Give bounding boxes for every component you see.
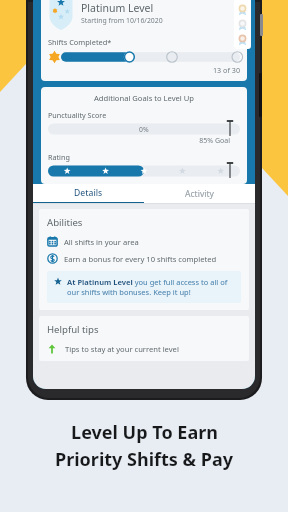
staticText: Rating	[48, 152, 70, 162]
other: Calendar	[47, 236, 58, 247]
staticText: Punctuality Score	[48, 110, 107, 120]
staticText: 0%	[139, 125, 149, 134]
staticText: Level Up To Earn	[71, 420, 218, 445]
staticText: Priority Shifts & Pay	[55, 447, 233, 472]
button[interactable]: Details	[33, 184, 144, 203]
other: Bonus	[47, 253, 58, 264]
button[interactable]: Activity	[144, 184, 255, 203]
button[interactable]: Abilities	[39, 209, 249, 310]
staticText: Shifts Completed*	[48, 37, 112, 47]
staticText: Starting from 10/16/2020	[81, 16, 163, 25]
staticText: Platinum Level	[81, 1, 154, 15]
staticText: Earn a bonus for every 10 shifts complet…	[64, 254, 217, 264]
staticText: Additional Goals to Level Up	[48, 93, 240, 103]
button[interactable]: Helpful tips	[39, 316, 249, 361]
staticText: At Platinum Level you get full access to…	[67, 277, 234, 297]
staticText: Tips to stay at your current level	[65, 344, 179, 354]
other: Level up	[47, 344, 57, 354]
staticText: Abilities	[47, 216, 83, 229]
staticText: Helpful tips	[47, 323, 99, 336]
staticText: Activity	[185, 188, 215, 200]
button[interactable]: Additional Goals to Level Up	[41, 87, 247, 184]
staticText: 85% Goal	[48, 136, 230, 146]
staticText: 13 of 30	[48, 65, 240, 75]
button[interactable]: Platinum Level	[41, 0, 247, 81]
staticText: Details	[74, 187, 103, 199]
staticText: All shifts in your area	[64, 237, 139, 247]
